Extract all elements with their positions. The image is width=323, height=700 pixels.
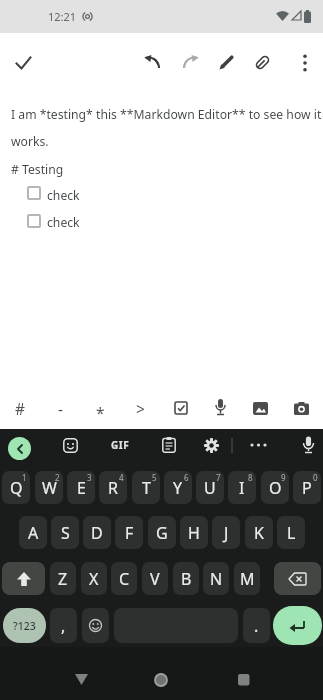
button[interactable]: F: [115, 516, 143, 549]
staticText: check: [47, 214, 80, 231]
button[interactable]: [298, 54, 312, 72]
staticText: D: [91, 522, 103, 544]
staticText: ?123: [13, 619, 36, 633]
button[interactable]: [8, 437, 31, 460]
button[interactable]: Y: [164, 471, 192, 504]
button[interactable]: B: [173, 562, 199, 595]
staticText: 12:21: [48, 9, 77, 24]
staticText: # Testing: [11, 161, 64, 178]
staticText: X: [89, 568, 99, 590]
staticText: S: [61, 522, 70, 544]
button[interactable]: G: [148, 516, 176, 549]
button[interactable]: K: [245, 516, 273, 549]
staticText: 4: [119, 472, 124, 483]
staticText: Y: [173, 477, 183, 499]
staticText: 7: [216, 472, 221, 483]
button[interactable]: D: [83, 516, 111, 549]
button[interactable]: .: [243, 608, 270, 643]
button[interactable]: [254, 54, 271, 71]
button[interactable]: [238, 674, 250, 686]
button[interactable]: [15, 55, 32, 71]
staticText: Q: [10, 477, 23, 499]
staticText: 1: [22, 472, 27, 483]
button[interactable]: T: [132, 471, 160, 504]
staticText: A: [28, 522, 39, 544]
staticText: E: [77, 477, 86, 499]
button[interactable]: [214, 399, 227, 416]
button[interactable]: N: [203, 562, 229, 595]
staticText: I: [239, 477, 245, 499]
button[interactable]: M: [234, 562, 260, 595]
staticText: T: [142, 477, 151, 499]
staticText: K: [254, 522, 264, 544]
button[interactable]: [253, 402, 268, 415]
button[interactable]: [181, 53, 199, 70]
button[interactable]: S: [51, 516, 79, 549]
staticText: .: [254, 615, 259, 637]
button[interactable]: A: [19, 516, 47, 549]
staticText: GIF: [111, 438, 130, 452]
button[interactable]: C: [111, 562, 137, 595]
staticText: Z: [58, 568, 68, 590]
staticText: 0: [313, 472, 318, 483]
button[interactable]: J: [212, 516, 240, 549]
staticText: >: [136, 398, 145, 419]
staticText: -: [58, 398, 63, 419]
button[interactable]: E: [67, 471, 95, 504]
button[interactable]: [218, 54, 235, 71]
button[interactable]: L: [277, 516, 305, 549]
button[interactable]: I: [228, 471, 256, 504]
button[interactable]: [75, 674, 88, 685]
button[interactable]: Z: [50, 562, 76, 595]
button[interactable]: [63, 438, 78, 453]
button[interactable]: U: [196, 471, 224, 504]
staticText: I am *testing* this **Markdown Editor** …: [11, 106, 322, 123]
staticText: J: [224, 522, 229, 544]
button[interactable]: [249, 441, 268, 449]
button[interactable]: [144, 53, 162, 70]
staticText: L: [287, 522, 296, 544]
button[interactable]: [274, 562, 321, 595]
staticText: 3: [87, 472, 92, 483]
button[interactable]: ?123: [3, 608, 46, 643]
button[interactable]: [162, 437, 176, 453]
staticText: R: [108, 477, 118, 499]
button[interactable]: -: [46, 396, 74, 420]
button[interactable]: >: [126, 396, 154, 420]
button[interactable]: P: [293, 471, 321, 504]
button[interactable]: *: [86, 400, 114, 424]
button[interactable]: [204, 438, 219, 453]
button[interactable]: Q: [2, 471, 30, 504]
button[interactable]: GIF: [106, 437, 134, 453]
button[interactable]: [273, 606, 322, 645]
button[interactable]: [154, 673, 168, 687]
button[interactable]: ,: [50, 608, 77, 643]
staticText: #: [15, 398, 26, 419]
button[interactable]: R: [99, 471, 127, 504]
button[interactable]: #: [6, 396, 34, 420]
button[interactable]: [174, 401, 188, 415]
button[interactable]: [27, 214, 41, 228]
staticText: 2: [55, 472, 60, 483]
button[interactable]: [27, 186, 41, 200]
button[interactable]: V: [142, 562, 168, 595]
button[interactable]: W: [35, 471, 63, 504]
button[interactable]: [294, 402, 309, 415]
staticText: *: [96, 402, 105, 423]
button[interactable]: [82, 608, 109, 643]
button[interactable]: [302, 436, 315, 454]
staticText: 9: [281, 472, 286, 483]
button[interactable]: X: [81, 562, 107, 595]
staticText: 5: [152, 472, 157, 483]
staticText: N: [210, 568, 223, 590]
button[interactable]: [2, 562, 45, 595]
staticText: V: [150, 568, 160, 590]
staticText: O: [269, 477, 282, 499]
button[interactable]: H: [180, 516, 208, 549]
staticText: 8: [248, 472, 253, 483]
staticText: F: [125, 522, 134, 544]
staticText: G: [156, 522, 168, 544]
staticText: check: [47, 187, 80, 204]
button[interactable]: O: [261, 471, 289, 504]
